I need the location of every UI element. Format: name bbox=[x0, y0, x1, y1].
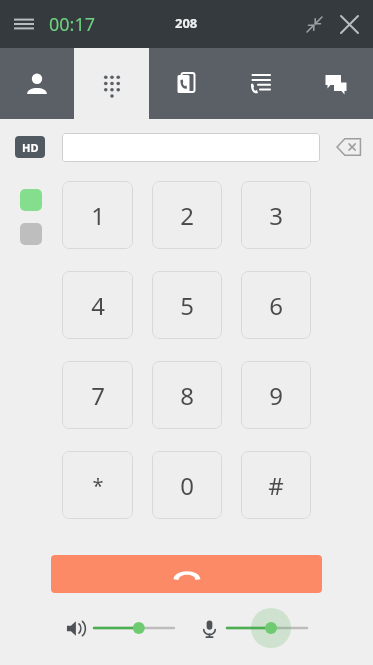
staticText: 6 bbox=[269, 289, 283, 322]
button[interactable]: Hang up bbox=[51, 555, 322, 593]
staticText: 00:17 bbox=[49, 12, 96, 37]
button[interactable]: Tab bbox=[298, 48, 373, 119]
staticText: 2 bbox=[180, 199, 194, 232]
button[interactable]: 5 bbox=[152, 271, 222, 339]
staticText: 5 bbox=[180, 289, 194, 322]
staticText: # bbox=[268, 469, 284, 502]
button[interactable]: 2 bbox=[152, 181, 222, 249]
button[interactable]: Line 2 bbox=[20, 223, 42, 245]
button[interactable]: Microphone volume bbox=[196, 615, 222, 641]
button[interactable]: 8 bbox=[152, 361, 222, 429]
button[interactable]: 4 bbox=[62, 271, 133, 339]
staticText: HD bbox=[22, 140, 39, 155]
button[interactable]: 9 bbox=[241, 361, 311, 429]
staticText: 7 bbox=[91, 379, 105, 412]
button[interactable]: Volume slider bbox=[94, 611, 174, 645]
staticText: 0 bbox=[180, 469, 194, 502]
button[interactable]: Dialpad bbox=[74, 48, 149, 119]
button[interactable]: Tab bbox=[149, 48, 223, 119]
button[interactable]: # bbox=[241, 451, 311, 519]
button[interactable]: HD audio bbox=[15, 136, 45, 158]
button[interactable]: Line 1 active bbox=[20, 189, 42, 211]
button[interactable]: Tab bbox=[0, 48, 74, 119]
button[interactable]: 6 bbox=[241, 271, 311, 339]
button[interactable]: Backspace bbox=[331, 131, 367, 163]
staticText: * bbox=[92, 472, 104, 499]
button[interactable]: * bbox=[62, 451, 133, 519]
button[interactable]: 1 bbox=[62, 181, 133, 249]
button[interactable]: Close bbox=[331, 6, 367, 42]
staticText: 1 bbox=[91, 199, 105, 232]
staticText: 208 bbox=[175, 14, 198, 32]
button[interactable]: Menu bbox=[8, 8, 40, 40]
button[interactable]: 7 bbox=[62, 361, 133, 429]
button[interactable]: Volume slider bbox=[227, 611, 307, 645]
button[interactable]: 3 bbox=[241, 181, 311, 249]
staticText: 9 bbox=[269, 379, 283, 412]
staticText: 4 bbox=[91, 289, 105, 322]
button[interactable]: Minimize bbox=[297, 7, 331, 41]
staticText: 3 bbox=[269, 199, 283, 232]
button[interactable]: 0 bbox=[152, 451, 222, 519]
button[interactable] bbox=[62, 133, 320, 162]
button[interactable]: Tab bbox=[223, 48, 298, 119]
staticText: 8 bbox=[180, 379, 194, 412]
button[interactable]: Speaker volume bbox=[62, 615, 88, 641]
